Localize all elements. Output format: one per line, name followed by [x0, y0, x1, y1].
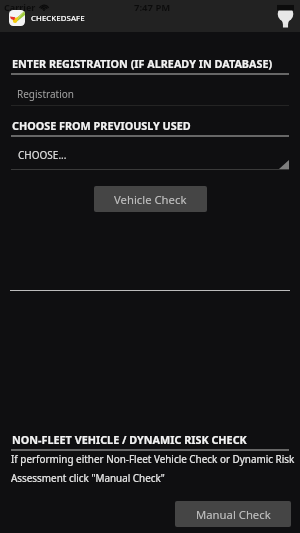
staticText: Registration — [17, 87, 74, 101]
staticText: Vehicle Check — [114, 192, 187, 207]
staticText: ENTER REGISTRATION (IF ALREADY IN DATABA… — [12, 56, 273, 71]
staticText: CHOOSE FROM PREVIOUSLY USED — [12, 118, 191, 133]
button[interactable]: Manual Check — [175, 501, 291, 527]
button[interactable]: Registration — [11, 87, 289, 109]
staticText: CHECKEDSAFE — [31, 13, 85, 24]
button[interactable]: Vehicle Check — [94, 186, 207, 212]
staticText: 7:47 PM — [134, 1, 171, 14]
staticText: If performing either Non-Fleet Vehicle C… — [11, 452, 300, 485]
button[interactable]: CHOOSE... — [11, 148, 289, 172]
staticText: NON-FLEET VEHICLE / DYNAMIC RISK CHECK — [12, 432, 247, 447]
staticText: CHOOSE... — [18, 148, 67, 162]
staticText: Manual Check — [196, 507, 271, 522]
staticText: Carrier — [4, 1, 36, 13]
button[interactable]: Torch — [274, 2, 297, 30]
